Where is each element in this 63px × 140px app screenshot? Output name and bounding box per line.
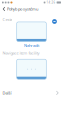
button[interactable]: Další (0, 87, 63, 99)
staticText: Cesta (2, 17, 12, 22)
staticText: Pohyb po systému (7, 6, 38, 12)
staticText: 14:26 (46, 1, 55, 4)
staticText: Nahradit (24, 43, 39, 48)
staticText: Navigace item facility (2, 50, 39, 56)
button[interactable]: Remove photo (52, 19, 57, 24)
staticText: Další (2, 90, 11, 96)
button[interactable]: Back (0, 5, 7, 13)
button[interactable]: Nahradit (21, 42, 41, 49)
